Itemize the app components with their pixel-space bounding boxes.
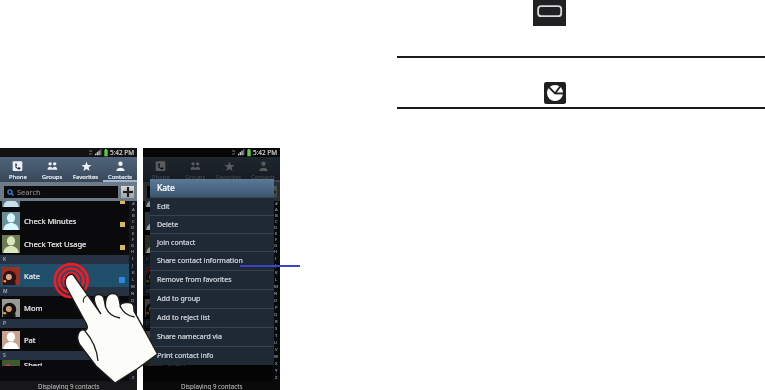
staticText: O [131,298,135,304]
staticText: J [275,263,277,269]
staticText: N [131,291,135,297]
staticText: H [131,249,135,255]
button[interactable]: Kate [0,264,137,287]
button[interactable]: Join contact [150,234,274,251]
staticText: Pat [167,335,179,345]
staticText: P [275,305,278,311]
button[interactable]: Pat [0,328,137,351]
staticText: P [3,320,7,327]
button[interactable]: Mom [0,296,137,319]
button[interactable]: Alphabet index [272,201,280,381]
button[interactable]: Alphabet index [129,201,137,381]
button[interactable]: Add to group [150,290,274,308]
button[interactable]: Check Balance [0,201,137,209]
button[interactable]: Delete [150,216,274,233]
staticText: G [131,243,135,249]
button[interactable]: Check Text Usage [0,232,137,255]
staticText: Y [275,368,278,374]
button[interactable]: Sheri [143,360,280,366]
button[interactable]: Groups [178,157,212,182]
staticText: T [275,333,278,339]
button[interactable]: Add to reject list [150,309,274,327]
staticText: S [275,326,278,332]
staticText: Search [160,187,184,197]
button[interactable]: Remove from favorites [150,271,274,289]
staticText: Check Text Usage [167,239,230,249]
button[interactable]: Share namecard via [150,328,274,346]
button[interactable]: Mom [143,296,280,319]
staticText: M [131,284,135,290]
staticText: Kate [24,271,40,281]
staticText: X [275,361,278,367]
button[interactable]: Sheri [0,360,137,366]
staticText: N [274,291,278,297]
button[interactable]: Check Minutes [143,209,280,232]
staticText: Remove from favorites [157,275,232,285]
button[interactable]: Edit [150,198,274,215]
staticText: Join contact [157,238,196,248]
staticText: Delete [157,220,179,230]
staticText: Sheri [167,360,186,366]
staticText: K [146,256,150,263]
staticText: M [3,288,8,295]
button[interactable]: Add contact [264,186,277,198]
staticText: K [132,270,135,276]
button[interactable]: Phone [0,157,35,182]
button[interactable]: Check Balance [143,201,280,209]
staticText: S [3,352,6,359]
staticText: K [3,256,7,263]
staticText: K [275,270,278,276]
button[interactable]: Contacts [246,157,280,182]
button[interactable]: Check Text Usage [143,232,280,255]
staticText: Groups [42,173,63,181]
staticText: Print contact info [157,351,214,361]
staticText: A [275,207,278,213]
button[interactable]: Namecard [533,0,566,26]
staticText: Share contact information [157,256,243,266]
button[interactable]: Search [147,186,261,198]
staticText: Share namecard via [157,332,222,342]
button[interactable]: Contacts [103,157,137,182]
button[interactable]: Phone [143,157,178,182]
staticText: O [274,298,278,304]
staticText: C [275,219,278,225]
button[interactable]: Favorites [212,157,246,182]
staticText: Z [275,375,278,381]
button[interactable]: Favorites [69,157,103,182]
staticText: G [274,243,278,249]
staticText: L [275,277,278,283]
button[interactable]: Pat [143,328,280,351]
staticText: E [132,231,135,237]
staticText: Z [132,375,135,381]
staticText: 5:42 PM [253,148,278,157]
staticText: P [132,305,135,311]
staticText: Favorites [73,173,99,181]
staticText: Sheri [24,360,43,366]
button[interactable]: Search [4,186,118,198]
staticText: Check Minutes [24,216,77,226]
button[interactable]: Share contact information [150,252,274,270]
button[interactable]: Groups [35,157,69,182]
staticText: M [274,284,278,290]
button[interactable]: Check Minutes [0,209,137,232]
staticText: C [132,219,135,225]
staticText: Phone [152,173,170,181]
button[interactable]: Print contact info [150,347,274,365]
button[interactable]: Add contact [121,186,134,198]
staticText: B [132,213,135,219]
staticText: Kate [157,182,175,194]
button[interactable]: Share namecard via email [544,82,566,104]
button[interactable]: Kate [150,179,274,197]
button[interactable]: Kate [143,264,280,287]
staticText: J [132,263,134,269]
staticText: Add to reject list [157,313,211,323]
staticText: Phone [9,173,27,181]
staticText: F [275,237,278,243]
